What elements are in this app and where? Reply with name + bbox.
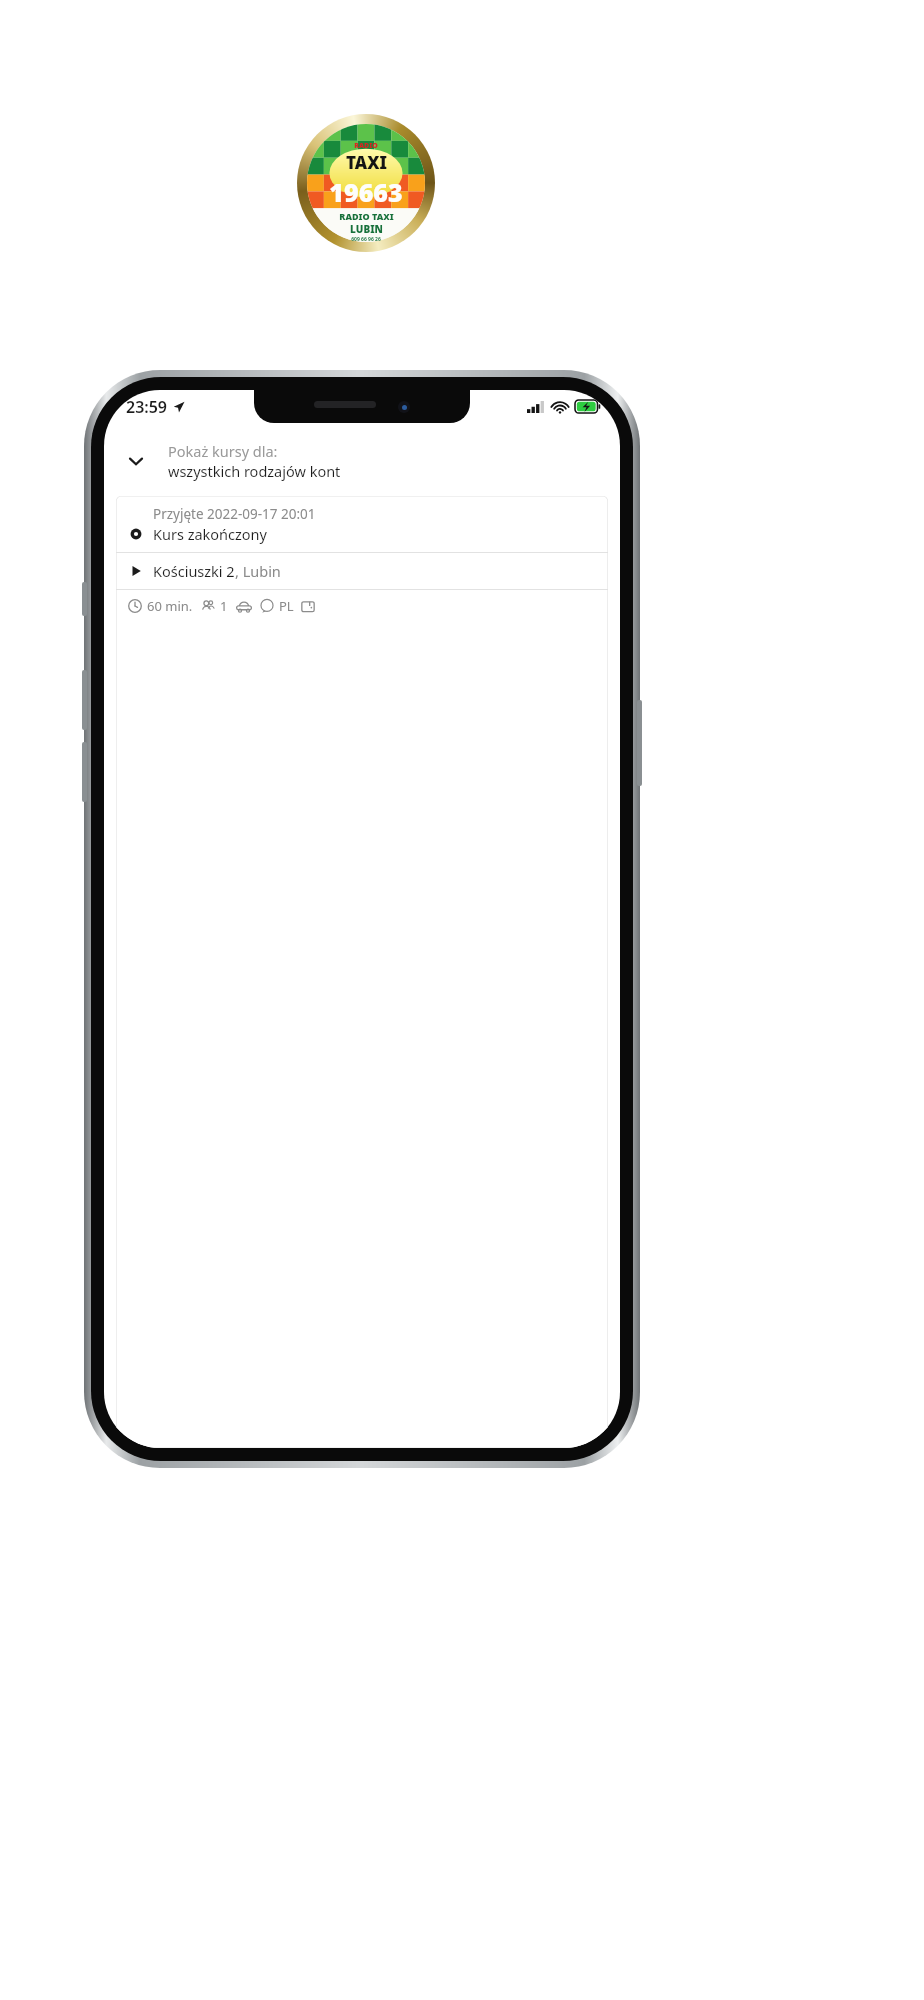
staticText: RADIO TAXI [339,210,394,222]
staticText: Przyjęte 2022-09-17 20:01 [153,505,316,523]
button[interactable]: Pokaż kursy dla: [104,437,620,485]
staticText: 1 [220,597,228,615]
staticText: TAXI [346,151,387,174]
staticText: 609 66 96 26 [351,236,381,243]
button[interactable]: Przyjęte 2022-09-17 20:01 [116,496,608,1448]
staticText: 60 min. [147,597,193,615]
staticText: Kurs zakończony [153,524,267,544]
staticText: RADIO [354,141,378,151]
staticText: wszystkich rodzajów kont [168,461,341,481]
staticText: Pokaż kursy dla: [168,441,278,461]
staticText: LUBIN [350,222,383,236]
staticText: 19663 [329,175,403,209]
staticText: 23:59 [126,396,168,418]
staticText: PL [279,597,294,615]
staticText: , Lubin [235,561,281,581]
staticText: Kościuszki 2 [153,561,235,581]
